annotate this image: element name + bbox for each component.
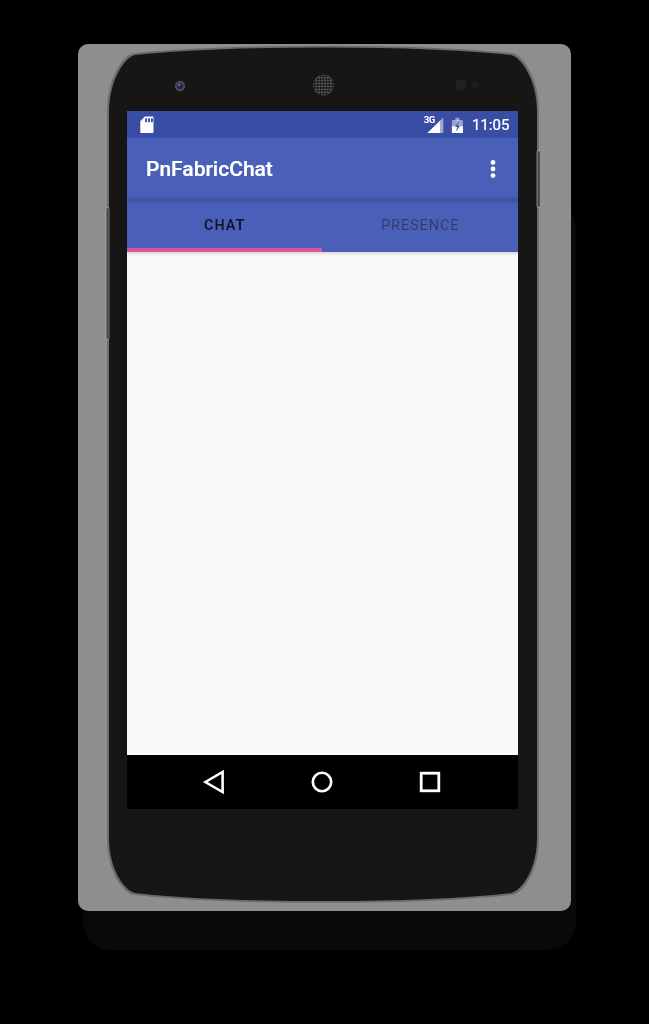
button[interactable]: CHAT (127, 200, 322, 248)
button[interactable]: More options (473, 149, 513, 189)
button[interactable]: PRESENCE (322, 200, 518, 248)
staticText: 3G (424, 115, 436, 126)
staticText: CHAT (204, 217, 246, 234)
button[interactable]: Back (190, 758, 238, 806)
button[interactable]: Home (298, 758, 346, 806)
staticText: 11:05 (472, 116, 510, 134)
staticText: PRESENCE (381, 217, 460, 234)
staticText: PnFabricChat (146, 157, 273, 182)
button[interactable]: Recent apps (406, 758, 454, 806)
